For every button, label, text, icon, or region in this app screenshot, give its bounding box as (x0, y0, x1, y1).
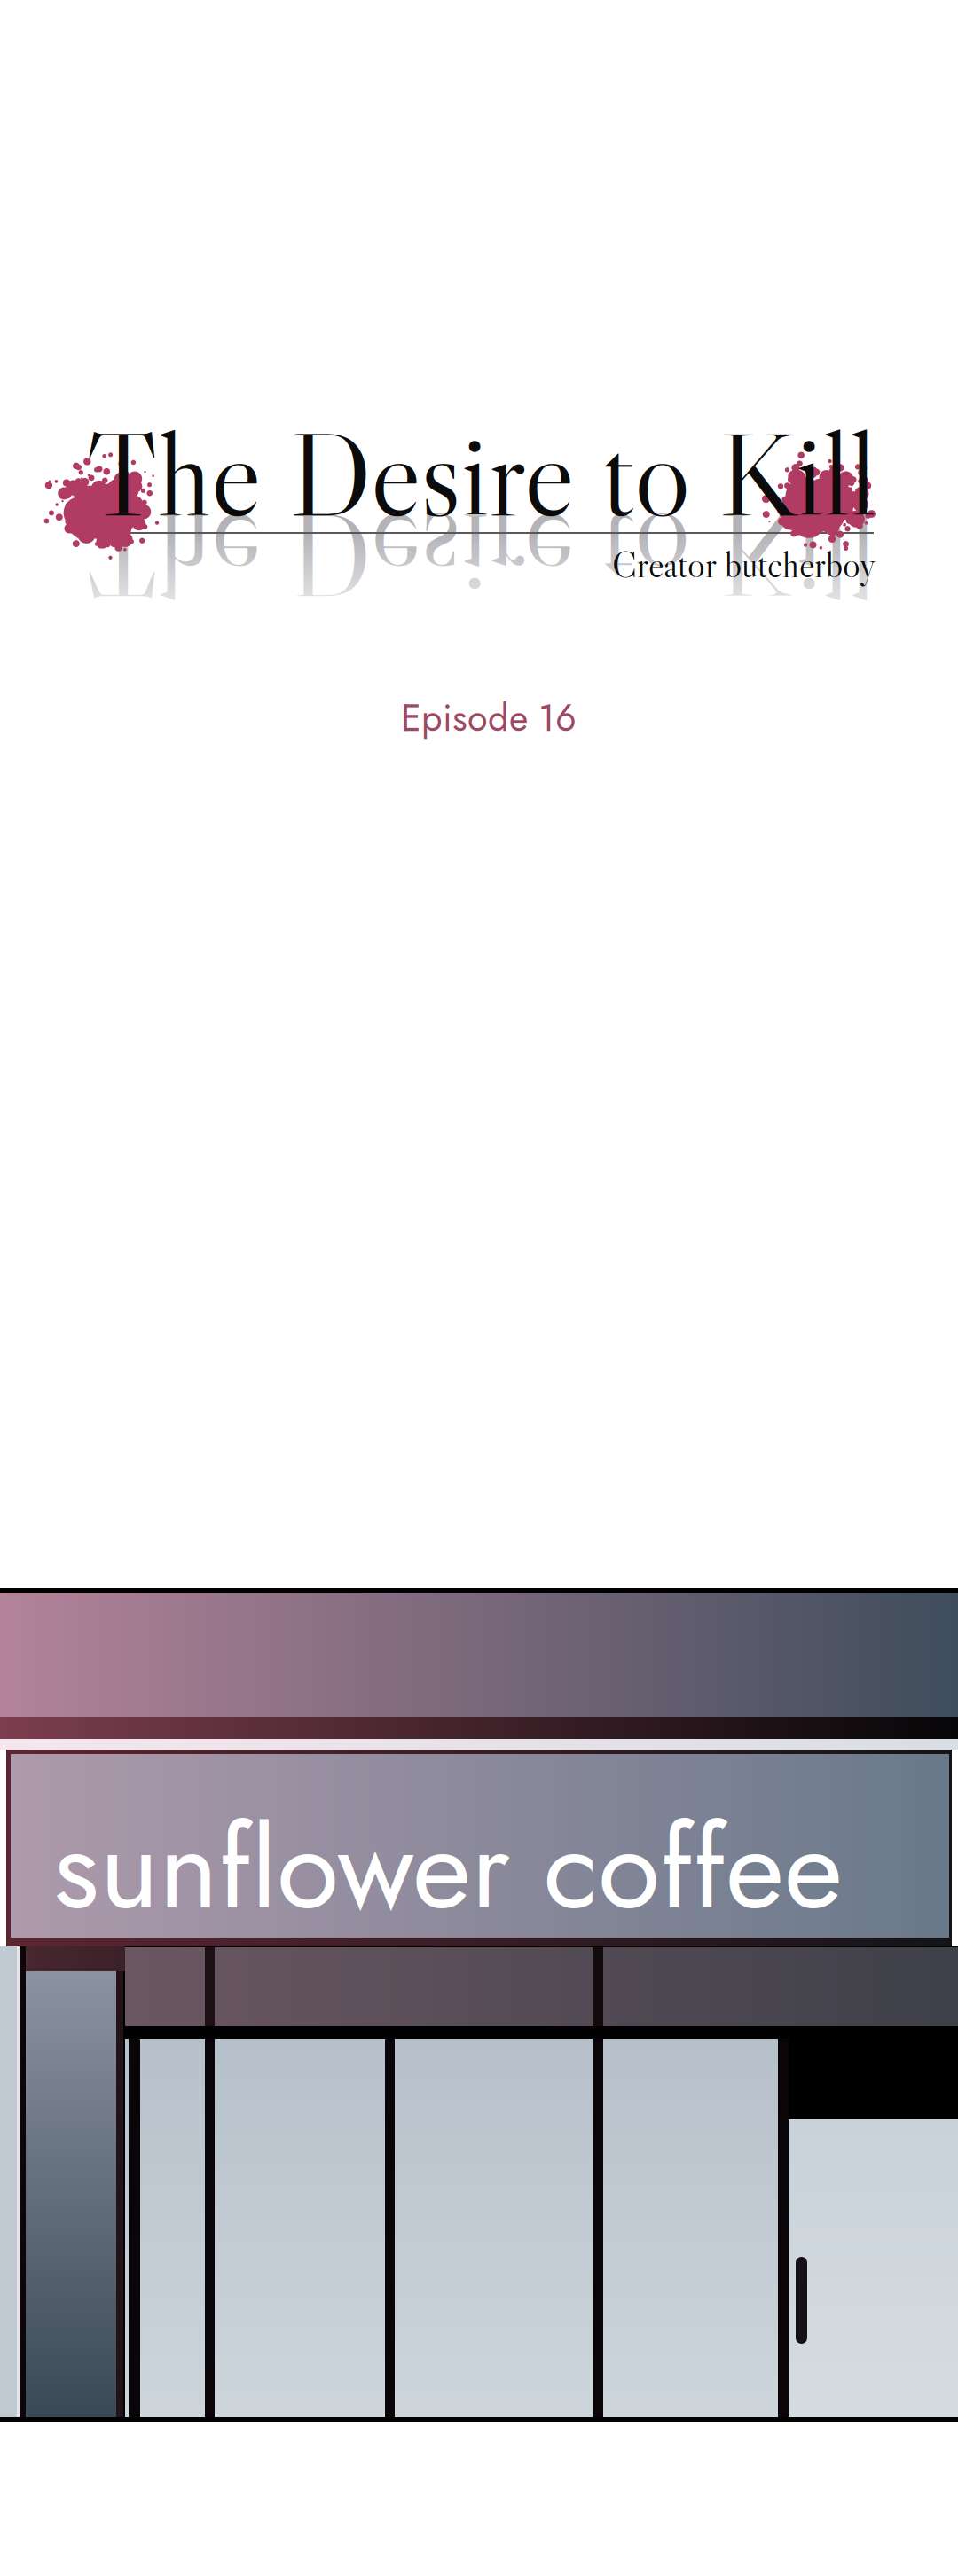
staticText: sunflower coffee (53, 1786, 843, 1950)
staticText: The Desire to Kill (86, 337, 876, 483)
staticText: The Desire to Kill (86, 401, 876, 547)
staticText: Episode 16 (401, 692, 577, 745)
staticText: Creator butcherboy (612, 542, 876, 587)
